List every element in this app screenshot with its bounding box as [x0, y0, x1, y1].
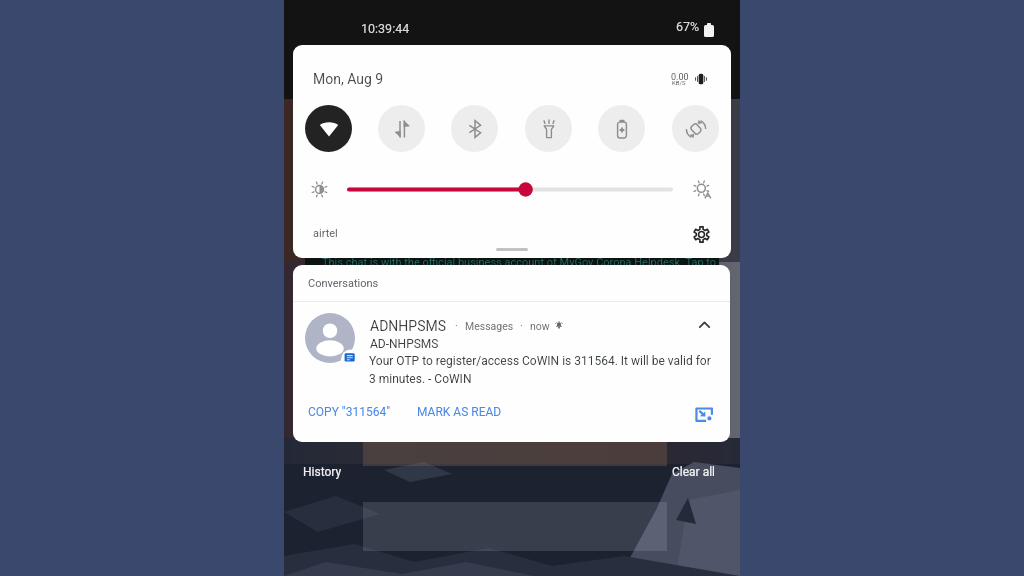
staticText: COPY "311564"	[308, 405, 390, 419]
staticText: MARK AS READ	[417, 405, 502, 419]
staticText: ·	[455, 320, 458, 332]
button[interactable]: Clear all	[667, 459, 721, 485]
button[interactable]: Quick setting	[305, 105, 352, 152]
button[interactable]: Quick setting	[378, 105, 425, 152]
staticText: Conversations	[308, 277, 379, 290]
staticText: History	[303, 465, 342, 479]
staticText: ·	[520, 320, 523, 332]
staticText: Messages	[465, 320, 514, 332]
button[interactable]: Quick setting	[598, 105, 645, 152]
button[interactable]: Quick setting	[451, 105, 498, 152]
staticText: now	[530, 320, 550, 332]
staticText: 0.00	[671, 72, 689, 83]
staticText: airtel	[313, 227, 338, 240]
staticText: 3 minutes. - CoWIN	[369, 372, 472, 386]
staticText: This chat is with the official business …	[322, 256, 717, 269]
button[interactable]: Collapse notification	[693, 311, 716, 334]
staticText: AD-NHPSMS	[370, 337, 439, 351]
button[interactable]: Quick setting	[525, 105, 572, 152]
button[interactable]: MARK AS READ	[411, 399, 512, 425]
staticText: 10:39:44	[361, 21, 410, 36]
button[interactable]: Brightness	[340, 181, 680, 198]
staticText: 67%	[676, 19, 700, 34]
button[interactable]: History	[298, 459, 347, 485]
button[interactable]: Settings	[689, 222, 713, 246]
button[interactable]: Bubble	[690, 400, 717, 427]
staticText: ADNHPSMS	[370, 318, 446, 334]
button[interactable]: Quick setting	[672, 105, 719, 152]
staticText: Your OTP to register/access CoWIN is 311…	[369, 354, 711, 368]
button[interactable]: COPY "311564"	[302, 399, 399, 425]
staticText: Mon, Aug 9	[313, 71, 384, 87]
staticText: Clear all	[672, 465, 716, 479]
staticText: KB/S	[672, 79, 686, 86]
